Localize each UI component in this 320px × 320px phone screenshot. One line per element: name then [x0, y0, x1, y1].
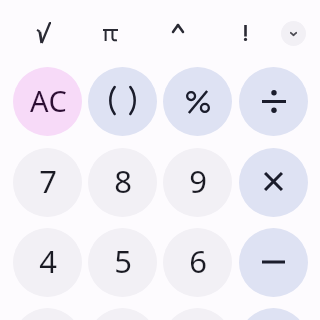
button[interactable]: 1	[13, 308, 82, 320]
button[interactable]: Parentheses	[88, 67, 157, 136]
button[interactable]: All clear	[13, 67, 82, 136]
button[interactable]: 9	[163, 148, 232, 217]
button[interactable]: Pi	[88, 13, 132, 53]
staticText: 4	[39, 240, 57, 282]
button[interactable]: Factorial	[223, 13, 267, 53]
staticText: 7	[39, 160, 57, 202]
button[interactable]: 7	[13, 148, 82, 217]
button[interactable]: Divide	[239, 67, 308, 136]
staticText: 6	[189, 240, 207, 282]
staticText: AC	[30, 81, 68, 120]
button[interactable]: Multiply	[239, 148, 308, 217]
button[interactable]: 8	[88, 148, 157, 217]
button[interactable]: Plus	[239, 308, 308, 320]
button[interactable]: 5	[88, 228, 157, 297]
button[interactable]: Power	[156, 13, 200, 53]
staticText: 9	[189, 160, 207, 202]
button[interactable]: Percent	[163, 67, 232, 136]
button[interactable]: 3	[163, 308, 232, 320]
staticText: 5	[114, 240, 132, 282]
button[interactable]: 4	[13, 228, 82, 297]
button[interactable]: 6	[163, 228, 232, 297]
button[interactable]: Minus	[239, 228, 308, 297]
button[interactable]: Show more	[281, 21, 306, 46]
button[interactable]: Square root	[22, 13, 66, 53]
button[interactable]: 2	[88, 308, 157, 320]
staticText: 8	[114, 160, 132, 202]
